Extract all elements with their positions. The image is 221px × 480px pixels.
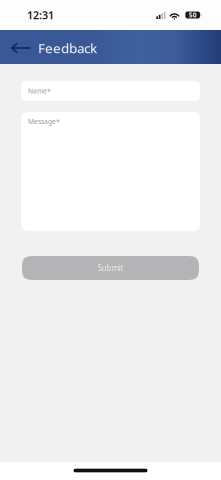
staticText: Name* [28,87,51,95]
staticText: 50 [189,11,197,19]
staticText: Submit [97,263,123,273]
button[interactable]: Name* [21,81,200,101]
button[interactable]: Message* [21,112,200,231]
staticText: 12:31 [27,8,54,22]
button[interactable]: Submit [21,256,200,280]
button[interactable]: Back [0,29,36,65]
staticText: Message* [28,117,60,126]
staticText: Feedback [38,39,97,57]
